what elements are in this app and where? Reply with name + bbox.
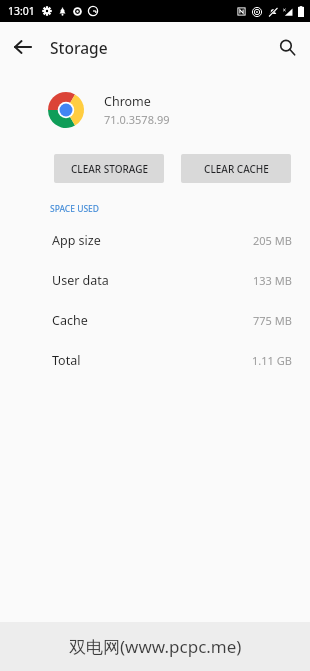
staticText: 双电网(www.pcpc.me): [69, 635, 242, 658]
button[interactable]: Search: [268, 28, 306, 66]
button[interactable]: User data: [0, 260, 310, 300]
staticText: 13:01: [8, 4, 35, 18]
staticText: Chrome: [104, 93, 151, 110]
button[interactable]: Total: [0, 340, 310, 380]
staticText: SPACE USED: [50, 203, 100, 215]
staticText: CLEAR CACHE: [204, 162, 269, 176]
staticText: 71.0.3578.99: [104, 112, 170, 127]
staticText: 133 MB: [253, 273, 292, 288]
button[interactable]: Cache: [0, 300, 310, 340]
staticText: Total: [52, 352, 81, 369]
staticText: Storage: [50, 37, 108, 58]
staticText: CLEAR STORAGE: [71, 162, 148, 176]
button[interactable]: CLEAR STORAGE: [54, 154, 164, 183]
staticText: App size: [52, 232, 101, 249]
button[interactable]: Chrome: [0, 86, 310, 134]
button[interactable]: Back: [4, 28, 42, 66]
staticText: 775 MB: [253, 313, 292, 328]
staticText: 1.11 GB: [252, 353, 292, 368]
staticText: 205 MB: [253, 233, 292, 248]
button[interactable]: CLEAR CACHE: [181, 154, 291, 183]
staticText: User data: [52, 272, 109, 289]
button[interactable]: App size: [0, 220, 310, 260]
staticText: Cache: [52, 312, 88, 329]
